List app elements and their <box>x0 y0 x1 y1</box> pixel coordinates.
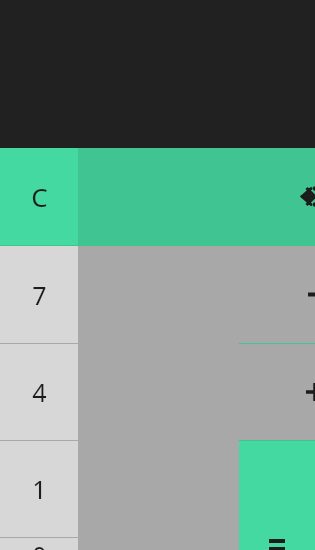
staticText: 1 <box>32 472 47 506</box>
staticText: 0 <box>32 538 47 550</box>
button[interactable]: 1 <box>0 441 78 537</box>
button[interactable]: 7 <box>0 246 78 343</box>
button[interactable]: 4 <box>0 344 78 440</box>
button[interactable]: C <box>0 148 78 245</box>
staticText: 4 <box>32 375 47 409</box>
button[interactable]: 0 <box>0 538 78 550</box>
staticText: C <box>31 179 48 214</box>
button[interactable]: Equals <box>239 441 315 550</box>
staticText: 7 <box>32 278 47 312</box>
